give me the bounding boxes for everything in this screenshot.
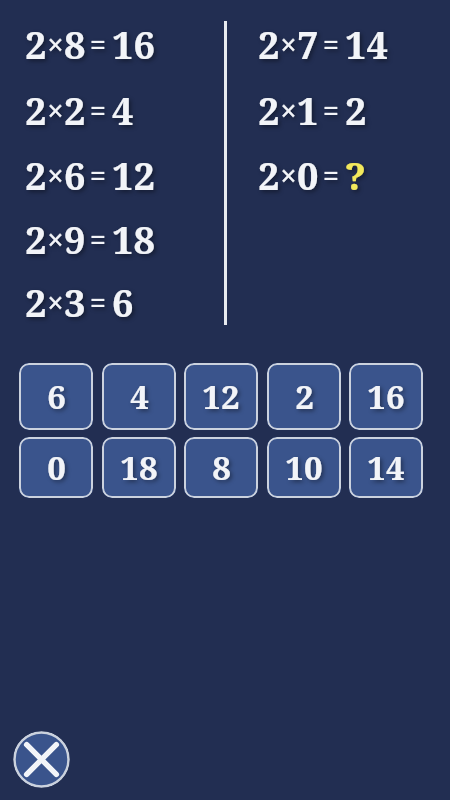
- button[interactable]: Close: [13, 731, 70, 788]
- staticText: 4: [130, 374, 149, 419]
- staticText: =: [90, 283, 106, 321]
- staticText: 8: [212, 445, 231, 490]
- staticText: 2: [25, 84, 47, 136]
- staticText: =: [323, 25, 339, 63]
- staticText: ?: [345, 149, 366, 201]
- staticText: =: [90, 91, 106, 129]
- staticText: 16: [112, 18, 155, 70]
- staticText: 2: [25, 149, 47, 201]
- staticText: 2: [25, 276, 47, 328]
- staticText: 2: [258, 18, 280, 70]
- button[interactable]: 4: [102, 363, 176, 430]
- staticText: =: [323, 156, 339, 194]
- button[interactable]: 6: [19, 363, 93, 430]
- staticText: =: [323, 91, 339, 129]
- staticText: 0: [47, 445, 66, 490]
- staticText: =: [90, 220, 106, 258]
- staticText: =: [90, 25, 106, 63]
- button[interactable]: 8: [184, 437, 258, 498]
- button[interactable]: 18: [102, 437, 176, 498]
- button[interactable]: 14: [349, 437, 423, 498]
- staticText: 6: [64, 149, 86, 201]
- staticText: 7: [297, 18, 319, 70]
- staticText: ×: [47, 282, 64, 323]
- staticText: 1: [297, 84, 319, 136]
- staticText: 2: [64, 84, 86, 136]
- button[interactable]: 16: [349, 363, 423, 430]
- staticText: 2: [258, 84, 280, 136]
- staticText: ×: [47, 24, 64, 65]
- staticText: ×: [47, 90, 64, 131]
- staticText: 18: [120, 445, 158, 490]
- staticText: 0: [297, 149, 319, 201]
- staticText: 12: [202, 374, 240, 419]
- staticText: 14: [367, 445, 405, 490]
- staticText: 12: [112, 149, 155, 201]
- staticText: 18: [112, 213, 155, 265]
- staticText: 2: [295, 374, 314, 419]
- button[interactable]: 12: [184, 363, 258, 430]
- staticText: 6: [112, 276, 134, 328]
- staticText: =: [90, 156, 106, 194]
- staticText: 14: [345, 18, 388, 70]
- staticText: 16: [367, 374, 405, 419]
- staticText: 2: [345, 84, 367, 136]
- staticText: 2: [258, 149, 280, 201]
- staticText: 2: [25, 18, 47, 70]
- button[interactable]: 10: [267, 437, 341, 498]
- staticText: ×: [280, 90, 297, 131]
- staticText: 10: [285, 445, 323, 490]
- button[interactable]: 0: [19, 437, 93, 498]
- staticText: 3: [64, 276, 86, 328]
- staticText: 6: [47, 374, 66, 419]
- staticText: ×: [280, 24, 297, 65]
- staticText: 9: [64, 213, 86, 265]
- staticText: 4: [112, 84, 134, 136]
- staticText: ×: [47, 219, 64, 260]
- staticText: ×: [47, 155, 64, 196]
- button[interactable]: 2: [267, 363, 341, 430]
- staticText: 2: [25, 213, 47, 265]
- staticText: ×: [280, 155, 297, 196]
- staticText: 8: [64, 18, 86, 70]
